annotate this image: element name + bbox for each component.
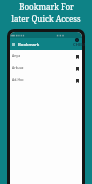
staticText: Anya xyxy=(12,53,21,58)
button[interactable]: Open navigation menu xyxy=(11,42,16,47)
staticText: Ad-Hoc xyxy=(12,77,24,82)
staticText: CHEM xyxy=(73,42,86,48)
staticText: Bookmark xyxy=(18,41,40,47)
staticText: later Quick Access xyxy=(11,13,81,24)
button[interactable]: Bookmark xyxy=(75,54,80,59)
button[interactable]: Anya xyxy=(10,50,82,62)
button[interactable]: Bookmark xyxy=(75,66,80,71)
staticText: Arkuuz xyxy=(12,65,24,70)
button[interactable]: Bookmark xyxy=(75,78,80,83)
staticText: Bookmark For xyxy=(19,1,74,12)
button[interactable]: Arkuuz xyxy=(10,62,82,74)
button[interactable]: Ad-Hoc xyxy=(10,74,82,86)
